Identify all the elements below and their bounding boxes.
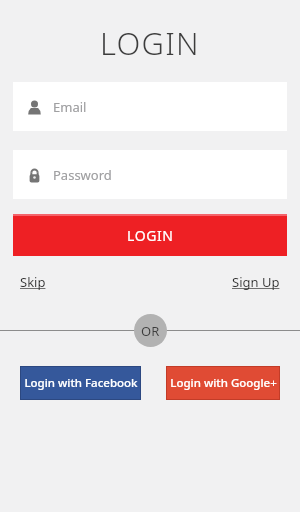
staticText: OR [141, 322, 160, 340]
button[interactable]: Email [13, 82, 287, 131]
button[interactable]: Sign Up [232, 273, 280, 291]
staticText: LOGIN [127, 226, 174, 245]
button[interactable]: Login with Google+ [166, 366, 280, 400]
staticText: Login with Google+ [170, 375, 277, 391]
button[interactable]: Skip [20, 273, 46, 291]
button[interactable]: Login with Facebook [20, 366, 141, 400]
staticText: Password [53, 166, 112, 184]
button[interactable]: Password [13, 150, 287, 199]
staticText: Email [53, 98, 87, 116]
staticText: Skip [20, 273, 46, 291]
staticText: LOGIN [100, 22, 200, 64]
staticText: Sign Up [232, 273, 280, 291]
staticText: Login with Facebook [24, 375, 138, 391]
button[interactable]: LOGIN [13, 214, 287, 256]
